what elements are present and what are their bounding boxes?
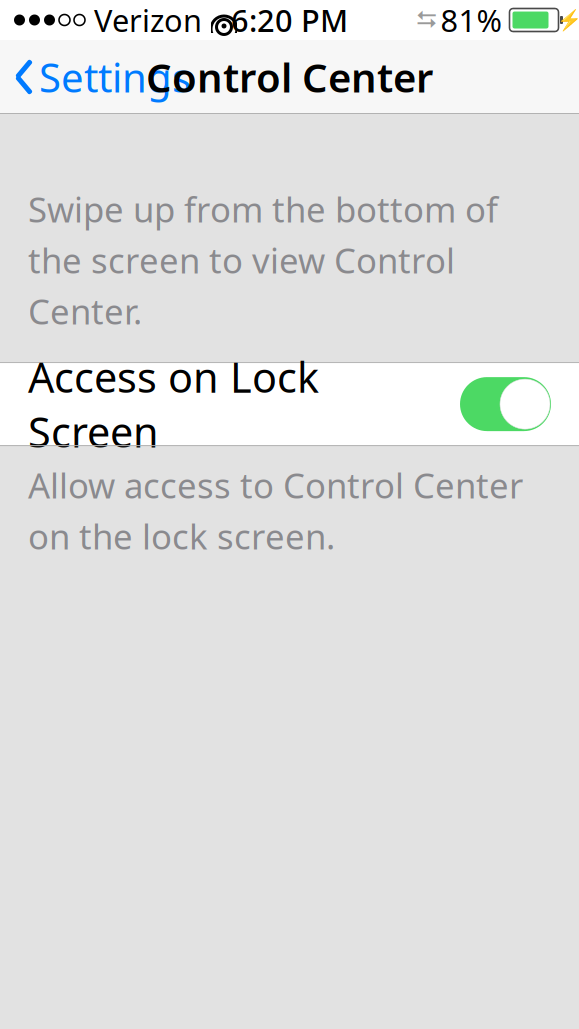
staticText: ⚡ <box>556 9 579 31</box>
staticText: Settings <box>39 50 191 103</box>
staticText: Verizon <box>94 0 202 40</box>
button[interactable]: Settings <box>0 42 201 112</box>
staticText: Access on Lock Screen <box>28 349 319 459</box>
button[interactable]: Access on Lock Screen <box>0 363 579 445</box>
staticText: Control Center <box>146 50 433 103</box>
staticText: Swipe up from the bottom of the screen t… <box>28 186 498 334</box>
staticText: Allow access to Control Center on the lo… <box>28 462 523 559</box>
staticText: 81% <box>440 0 501 40</box>
staticText: ⮀ <box>416 8 436 32</box>
staticText: 6:20 PM <box>231 0 348 40</box>
